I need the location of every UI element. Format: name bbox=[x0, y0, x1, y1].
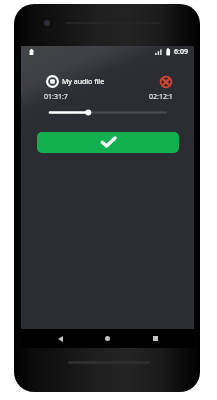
button[interactable]: Recent apps bbox=[147, 330, 164, 347]
button[interactable]: Back bbox=[52, 330, 69, 347]
button[interactable]: Cancel bbox=[160, 76, 172, 88]
button[interactable]: Stop bbox=[46, 75, 59, 88]
staticText: 6:09 bbox=[174, 47, 188, 57]
button[interactable]: Confirm bbox=[37, 132, 179, 153]
staticText: 02:12:1 bbox=[149, 92, 173, 102]
staticText: My audio file bbox=[62, 77, 105, 87]
button[interactable]: Home bbox=[99, 330, 116, 347]
staticText: 01:31:7 bbox=[44, 92, 68, 102]
